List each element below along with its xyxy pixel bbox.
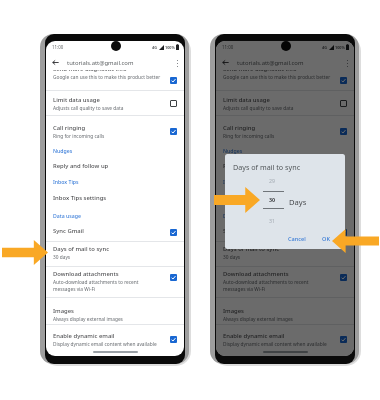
button[interactable]: Enable dynamic email (216, 329, 354, 353)
button[interactable]: Cancel (287, 233, 306, 244)
staticText: Download attachments (223, 270, 289, 278)
staticText: Download attachments (53, 270, 119, 278)
staticText: 31 (269, 217, 275, 224)
staticText: 29 (269, 177, 275, 184)
staticText: OK (322, 235, 330, 243)
button[interactable]: Reply and follow up (46, 159, 184, 177)
button[interactable]: Back (216, 53, 235, 72)
button[interactable]: More options (170, 56, 184, 70)
staticText: 100% (165, 45, 175, 50)
staticText: Ring for incoming calls (223, 133, 275, 140)
staticText: Display dynamic email content when avail… (53, 341, 157, 348)
button[interactable]: More options (340, 56, 354, 70)
staticText: Auto-download attachments to recent mess… (223, 279, 315, 292)
staticText: 30 days (223, 254, 241, 261)
button[interactable]: Toggle (340, 229, 347, 236)
staticText: Reply and follow up (53, 162, 109, 170)
button[interactable]: Images (46, 304, 184, 328)
button[interactable]: OK (319, 233, 333, 244)
button[interactable]: Toggle (170, 229, 177, 236)
staticText: Inbox Tips settings (53, 194, 107, 202)
staticText: Days (289, 197, 307, 207)
button[interactable]: Days of mail to sync (46, 242, 184, 266)
button[interactable]: Enable dynamic email (46, 329, 184, 353)
staticText: Enable dynamic email (223, 332, 285, 340)
staticText: Call ringing (53, 124, 86, 132)
button[interactable]: Inbox Tips settings (216, 191, 354, 209)
staticText: Days of mail to sync (223, 245, 280, 253)
button[interactable]: Toggle (340, 274, 347, 281)
button[interactable]: Inbox Tips settings (46, 191, 184, 209)
staticText: 30 days (53, 254, 71, 261)
button[interactable]: Send more diagnostic info (46, 70, 184, 89)
button[interactable]: Sync Gmail (46, 224, 184, 242)
button[interactable]: Download attachments (216, 267, 354, 291)
staticText: Limit data usage (223, 96, 270, 104)
staticText: tutorials.att@gmail.com (237, 59, 304, 67)
staticText: Enable dynamic email (53, 332, 115, 340)
button[interactable]: Images (216, 304, 354, 328)
button[interactable]: Toggle (340, 336, 347, 343)
staticText: Days of mail to sync (233, 162, 301, 172)
staticText: Ring for incoming calls (53, 133, 105, 140)
button[interactable]: Toggle (170, 77, 177, 84)
staticText: Google can use this to make this product… (53, 74, 161, 81)
staticText: Send more diagnostic info (223, 70, 297, 73)
button[interactable]: Toggle (340, 100, 347, 107)
staticText: 4G (152, 45, 157, 50)
staticText: Call ringing (223, 124, 256, 132)
staticText: Images (223, 307, 244, 315)
button[interactable]: Toggle (340, 77, 347, 84)
staticText: Inbox Tips (223, 178, 249, 185)
button[interactable]: Call ringing (46, 121, 184, 145)
staticText: 30 (269, 196, 276, 203)
button[interactable]: Limit data usage (46, 93, 184, 117)
staticText: Nudges (53, 147, 73, 154)
staticText: 11:00 (52, 44, 64, 50)
staticText: Days of mail to sync (53, 245, 110, 253)
button[interactable]: Toggle (340, 128, 347, 135)
button[interactable]: Days of mail to sync (216, 242, 354, 266)
staticText: Always display external images (223, 316, 293, 323)
staticText: Adjusts call quality to save data (53, 105, 124, 112)
staticText: Sync Gmail (223, 227, 254, 235)
staticText: Inbox Tips settings (223, 194, 277, 202)
staticText: Nudges (223, 147, 243, 154)
staticText: Send more diagnostic info (53, 70, 127, 73)
button[interactable]: Download attachments (46, 267, 184, 291)
staticText: Display dynamic email content when avail… (223, 341, 327, 348)
button[interactable]: Sync Gmail (216, 224, 354, 242)
staticText: 11:00 (222, 44, 234, 50)
staticText: Adjusts call quality to save data (223, 105, 294, 112)
button[interactable]: Back (46, 53, 65, 72)
staticText: tutorials.att@gmail.com (67, 59, 134, 67)
staticText: Cancel (288, 235, 306, 243)
button[interactable]: Toggle (170, 100, 177, 107)
button[interactable]: Call ringing (216, 121, 354, 145)
staticText: Data usage (53, 212, 81, 219)
staticText: Data usage (223, 212, 251, 219)
staticText: Reply and follow up (223, 162, 279, 170)
button[interactable]: Reply and follow up (216, 159, 354, 177)
button[interactable]: Limit data usage (216, 93, 354, 117)
staticText: 4G (322, 45, 327, 50)
staticText: Limit data usage (53, 96, 100, 104)
staticText: Always display external images (53, 316, 123, 323)
staticText: Auto-download attachments to recent mess… (53, 279, 145, 292)
staticText: 100% (335, 45, 345, 50)
staticText: Google can use this to make this product… (223, 74, 331, 81)
staticText: Sync Gmail (53, 227, 84, 235)
staticText: Images (53, 307, 74, 315)
button[interactable]: Toggle (170, 336, 177, 343)
button[interactable]: Toggle (170, 128, 177, 135)
staticText: Inbox Tips (53, 178, 79, 185)
button[interactable]: Send more diagnostic info (216, 70, 354, 89)
button[interactable]: Toggle (170, 274, 177, 281)
